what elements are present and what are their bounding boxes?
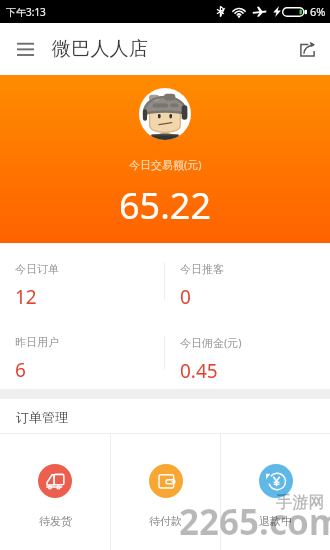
staticText: 今日交易额(元) <box>129 157 202 172</box>
button[interactable]: 待发货 <box>0 434 110 550</box>
button[interactable]: 今日推客 <box>165 243 330 316</box>
button[interactable]: Profile avatar <box>139 88 191 140</box>
button[interactable]: 今日佣金(元) <box>165 316 330 389</box>
staticText: 0.45 <box>180 358 218 384</box>
staticText: 6% <box>310 4 326 19</box>
staticText: 12 <box>15 284 37 310</box>
staticText: 手游网 <box>276 493 324 513</box>
button[interactable]: 昨日用户 <box>0 316 164 389</box>
staticText: 下午3:13 <box>6 5 46 19</box>
staticText: 2265.com <box>179 498 330 546</box>
button[interactable]: 待付款 <box>111 434 220 550</box>
button[interactable]: 退款中 <box>221 434 330 550</box>
staticText: 今日推客 <box>180 262 224 276</box>
staticText: 6 <box>15 357 26 383</box>
staticText: 0 <box>180 284 191 310</box>
staticText: 退款中 <box>259 514 292 528</box>
staticText: 待付款 <box>149 514 182 528</box>
staticText: 65.22 <box>119 181 212 230</box>
button[interactable]: Share <box>291 33 323 65</box>
button[interactable]: Menu <box>7 31 43 67</box>
staticText: 昨日用户 <box>15 335 59 349</box>
staticText: 订单管理 <box>16 409 68 425</box>
staticText: 今日佣金(元) <box>180 335 242 350</box>
staticText: 今日订单 <box>15 262 59 276</box>
button[interactable]: 今日订单 <box>0 243 164 316</box>
staticText: 待发货 <box>39 514 72 528</box>
staticText: 微巴人人店 <box>52 37 148 61</box>
